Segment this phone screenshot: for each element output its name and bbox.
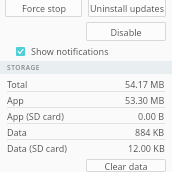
staticText: App (SD card) [7, 110, 64, 122]
staticText: STORAGE [7, 63, 40, 72]
staticText: Data (SD card) [7, 142, 67, 154]
staticText: Show notifications [31, 45, 109, 57]
staticText: App [7, 94, 24, 106]
button[interactable]: Force stop [5, 0, 82, 17]
staticText: 0.00 B [138, 110, 165, 122]
staticText: 54.17 MB [125, 78, 165, 90]
staticText: Force stop [22, 2, 66, 14]
staticText: 12.00 KB [128, 142, 165, 154]
staticText: Uninstall updates [90, 2, 164, 14]
staticText: Total [7, 78, 28, 90]
staticText: Data [7, 126, 27, 138]
staticText: 53.30 MB [125, 94, 165, 106]
button[interactable]: App (SD card) [0, 108, 172, 123]
button[interactable]: Total [0, 76, 172, 91]
button[interactable]: Data (SD card) [0, 140, 172, 155]
staticText: 884 KB [135, 126, 165, 138]
button[interactable]: App [0, 92, 172, 107]
staticText: Disable [110, 26, 142, 38]
button[interactable]: Data [0, 124, 172, 139]
button[interactable]: Disable [86, 22, 166, 41]
button[interactable]: Show notifications [0, 41, 172, 61]
staticText: Clear data [104, 160, 148, 172]
button[interactable]: Clear data [86, 159, 166, 172]
button[interactable]: Uninstall updates [88, 0, 166, 17]
